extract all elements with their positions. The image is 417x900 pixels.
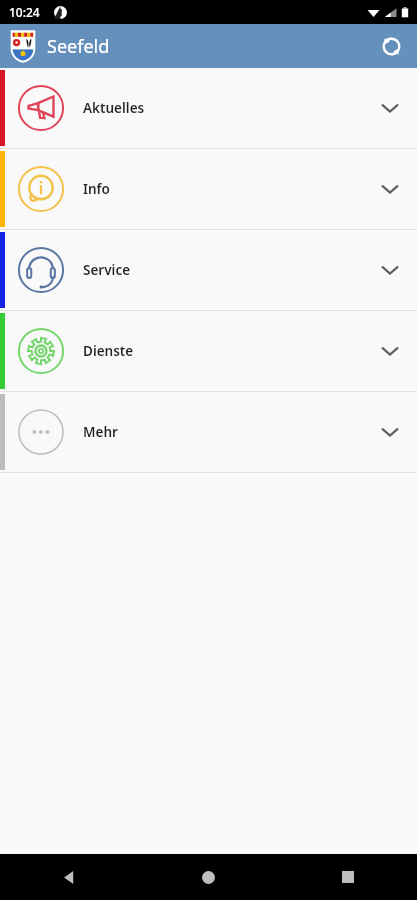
staticText: Seefeld xyxy=(47,34,110,59)
button[interactable]: Info xyxy=(0,149,417,229)
staticText: Info xyxy=(83,180,369,198)
button[interactable]: Service xyxy=(0,230,417,310)
button[interactable]: Refresh xyxy=(371,26,411,66)
button[interactable]: Recents xyxy=(278,854,417,900)
staticText: Aktuelles xyxy=(83,99,369,117)
button[interactable]: Dienste xyxy=(0,311,417,391)
button[interactable]: Aktuelles xyxy=(0,68,417,148)
button[interactable]: Back xyxy=(0,854,139,900)
staticText: Dienste xyxy=(83,342,369,360)
button[interactable]: Mehr xyxy=(0,392,417,472)
staticText: Service xyxy=(83,261,369,279)
staticText: Mehr xyxy=(83,423,369,441)
staticText: 10:24 xyxy=(9,4,40,20)
button[interactable]: Home xyxy=(139,854,278,900)
